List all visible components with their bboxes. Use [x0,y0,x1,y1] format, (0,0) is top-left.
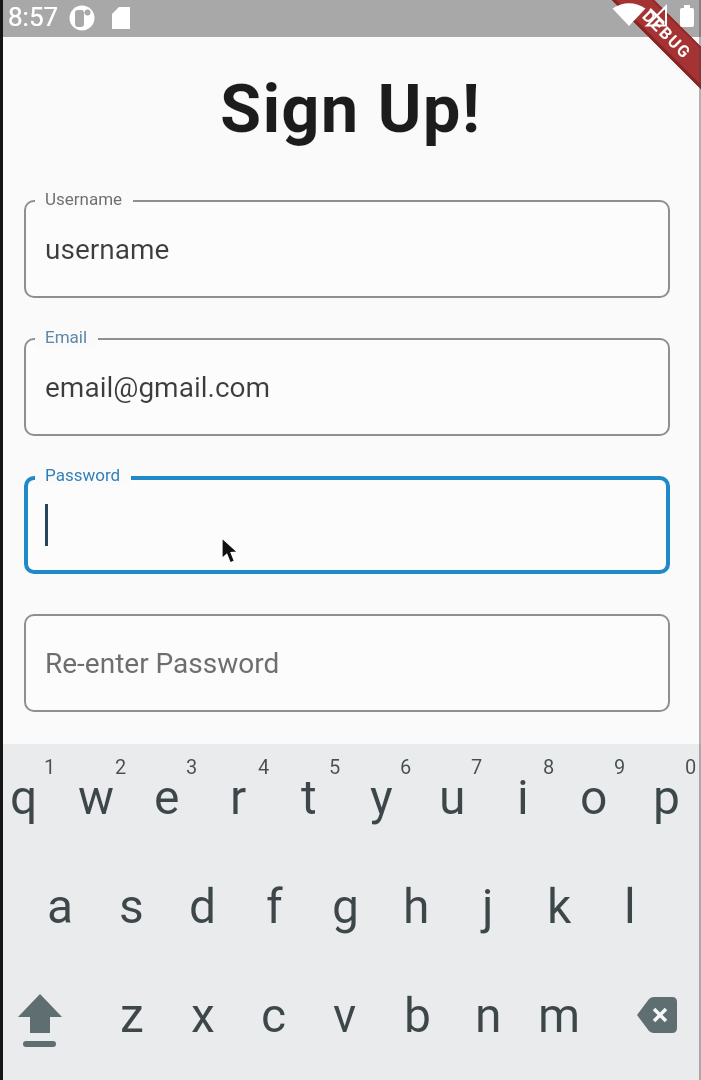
staticText: t [301,769,317,825]
staticText: 8 [543,755,555,778]
button[interactable]: c [239,981,309,1049]
staticText: 2 [115,755,127,778]
button[interactable] [24,476,670,574]
button[interactable]: s [96,872,166,940]
staticText: Email [45,327,88,347]
staticText: l [624,878,636,934]
staticText: Re-enter Password [45,647,280,680]
staticText: z [120,987,144,1043]
button[interactable]: Re-enter Password [24,614,670,712]
button[interactable] [622,981,692,1049]
staticText: Password [45,465,121,485]
staticText: w [78,769,115,825]
staticText: s [119,878,144,934]
staticText: x [191,987,215,1043]
staticText: h [403,878,430,934]
button[interactable]: a [25,872,95,940]
staticText: e [154,769,180,825]
button[interactable]: o [559,763,629,831]
staticText: u [439,769,466,825]
staticText: 1 [44,755,56,778]
staticText: m [538,987,581,1043]
staticText: g [332,878,359,934]
staticText: f [266,878,283,934]
staticText: b [404,987,431,1043]
button[interactable]: email@gmail.com [24,338,670,436]
staticText: email@gmail.com [45,371,271,404]
button[interactable]: i [488,763,558,831]
staticText: a [47,878,74,934]
button[interactable]: k [524,872,594,940]
staticText: i [517,769,529,825]
staticText: Username [45,189,123,209]
staticText: 6 [400,755,412,778]
button[interactable]: q [0,763,59,831]
button[interactable]: r [203,763,273,831]
staticText: 3 [186,755,198,778]
staticText: r [230,769,247,825]
button[interactable]: username [24,200,670,298]
staticText: y [370,769,393,825]
button[interactable]: j [453,872,523,940]
staticText: j [482,878,494,934]
button[interactable]: l [595,872,665,940]
button[interactable]: n [453,981,523,1049]
button[interactable]: y [346,763,416,831]
button[interactable]: u [417,763,487,831]
button[interactable]: v [310,981,380,1049]
button[interactable]: b [382,981,452,1049]
staticText: q [10,769,38,825]
button[interactable]: g [310,872,380,940]
staticText: username [45,233,170,266]
button[interactable]: t [274,763,344,831]
staticText: Sign Up! [220,70,482,149]
staticText: 9 [614,755,626,778]
button[interactable]: e [132,763,202,831]
staticText: DEBUG [639,6,695,63]
button[interactable]: m [524,981,594,1049]
staticText: 4 [258,755,270,778]
button[interactable]: d [168,872,238,940]
staticText: 0 [685,755,697,778]
staticText: v [333,987,357,1043]
staticText: o [580,769,608,825]
button[interactable] [5,981,75,1049]
button[interactable]: x [168,981,238,1049]
staticText: 5 [329,755,341,778]
button[interactable]: w [61,763,131,831]
button[interactable]: f [239,872,309,940]
staticText: d [189,878,217,934]
button[interactable]: z [97,981,167,1049]
staticText: n [475,987,502,1043]
staticText: 7 [471,755,483,778]
staticText: k [547,878,572,934]
staticText: 8:57 [8,2,59,32]
button[interactable]: p [631,763,701,831]
staticText: c [261,987,287,1043]
button[interactable]: h [381,872,451,940]
staticText: p [653,769,680,825]
